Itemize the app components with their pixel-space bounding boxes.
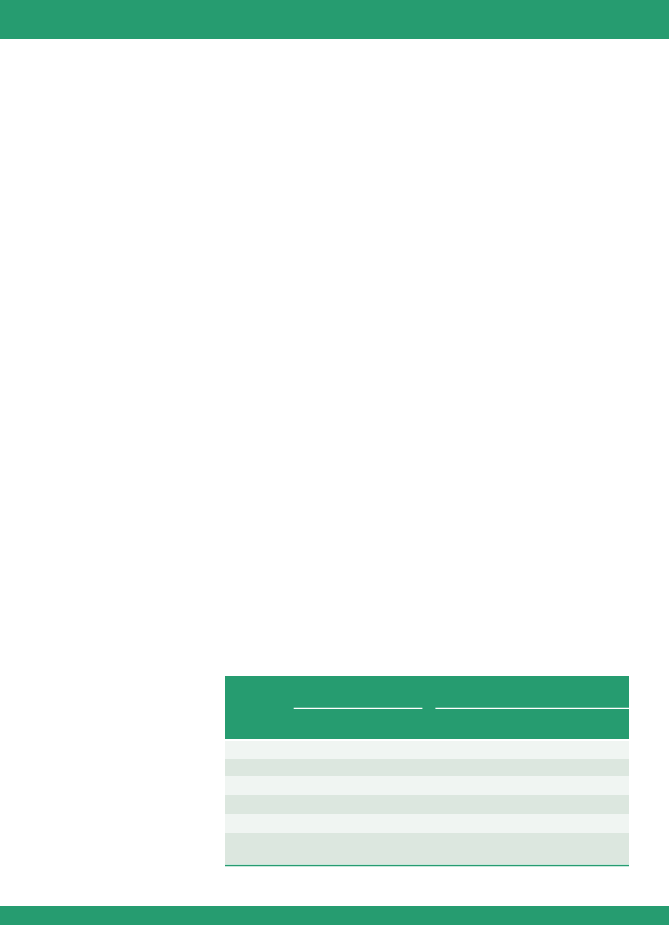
button[interactable]: Table header	[225, 676, 629, 739]
